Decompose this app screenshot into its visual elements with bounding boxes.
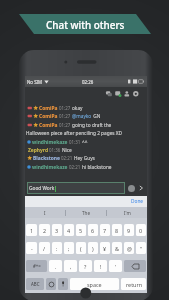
staticText: 01:27 (59, 105, 71, 111)
button[interactable]: Zephyrd (26, 146, 72, 154)
staticText: No SIM (27, 79, 43, 85)
staticText: " (140, 245, 143, 252)
button[interactable]: Chat with others (34, 14, 136, 34)
staticText: #+= (33, 263, 41, 269)
button[interactable]: ! (94, 260, 107, 272)
button[interactable]: ComiPa (26, 121, 112, 129)
staticText: ComiPa (39, 105, 58, 112)
staticText: 8 (115, 227, 119, 234)
staticText: Halloween piece after penciling 2 pages … (26, 130, 123, 136)
button[interactable]: ' (109, 260, 122, 272)
button[interactable]: 1 (26, 224, 37, 236)
staticText: 02:21 (69, 164, 81, 170)
button[interactable]: - (26, 242, 37, 254)
button[interactable]: Halloween piece after penciling 2 pages … (26, 129, 123, 137)
button[interactable]: return (121, 278, 146, 290)
button[interactable]: windhimekaze (26, 138, 88, 146)
staticText: I (44, 210, 46, 216)
button[interactable]: Profile (122, 87, 131, 101)
button[interactable]: ¥ (100, 242, 110, 254)
button[interactable]: ComiPa (26, 104, 83, 112)
button[interactable]: 9 (124, 224, 134, 236)
staticText: 3 (55, 227, 59, 234)
button[interactable]: ( (76, 242, 86, 254)
button[interactable]: windhimekaze (26, 163, 112, 171)
button[interactable]: 4 (64, 224, 74, 236)
staticText: ? (84, 263, 87, 270)
staticText: space (87, 281, 102, 288)
staticText: ' (115, 263, 117, 270)
button[interactable]: @ (124, 242, 134, 254)
button[interactable]: 5 (76, 224, 86, 236)
button[interactable]: space (70, 278, 119, 290)
staticText: : (56, 245, 58, 252)
button[interactable]: Blackstone (26, 154, 95, 162)
staticText: ; (68, 245, 70, 252)
button[interactable]: #+= (26, 260, 47, 272)
button[interactable]: ? (79, 260, 92, 272)
staticText: ComiPa (39, 113, 58, 120)
button[interactable]: & (112, 242, 122, 254)
button[interactable]: " (136, 242, 146, 254)
staticText: Hey Guys (74, 155, 95, 161)
button[interactable]: Chats (104, 87, 113, 101)
staticText: going to draft the (72, 122, 112, 128)
button[interactable]: I'm (107, 207, 147, 218)
staticText: GN (92, 113, 101, 119)
button[interactable]: 3 (52, 224, 62, 236)
staticText: windhimekaze (32, 164, 68, 171)
button[interactable]: Send (137, 184, 145, 192)
staticText: 4 (67, 227, 71, 234)
button[interactable]: : (52, 242, 62, 254)
button[interactable]: Dictate (58, 278, 68, 290)
staticText: ! (100, 263, 102, 270)
staticText: 6 (91, 227, 95, 234)
staticText: hi blackstone (82, 164, 112, 170)
button[interactable]: 6 (88, 224, 98, 236)
button[interactable]: / (39, 242, 50, 254)
button[interactable]: Attach (128, 185, 135, 192)
staticText: ( (80, 245, 82, 252)
staticText: 9 (127, 227, 131, 234)
staticText: ^^ (82, 139, 88, 145)
staticText: 5 (79, 227, 83, 234)
staticText: @mayko (72, 113, 92, 119)
staticText: Good Work (29, 185, 55, 192)
staticText: 2 (43, 227, 47, 234)
button[interactable]: Settings (131, 87, 140, 101)
button[interactable]: 2 (39, 224, 50, 236)
button[interactable]: 8 (112, 224, 122, 236)
button[interactable]: The (66, 207, 106, 218)
staticText: Blackstone (33, 155, 60, 162)
button[interactable]: ComiPa (26, 112, 101, 120)
staticText: Zephyrd (28, 147, 48, 154)
staticText: . (55, 263, 57, 270)
staticText: Done (131, 198, 144, 205)
staticText: Chat with others (46, 18, 125, 31)
staticText: 1 (30, 227, 34, 234)
staticText: return (126, 281, 142, 288)
staticText: - (31, 245, 33, 252)
button[interactable]: Messages (113, 87, 122, 101)
staticText: I'm (124, 210, 131, 216)
button[interactable]: ) (88, 242, 98, 254)
button[interactable]: I (25, 207, 65, 218)
staticText: ¥ (103, 245, 107, 252)
staticText: 01:36 (49, 147, 61, 153)
staticText: The (82, 210, 90, 216)
button[interactable]: 7 (100, 224, 110, 236)
button[interactable]: ; (64, 242, 74, 254)
button[interactable]: . (49, 260, 62, 272)
button[interactable]: Backspace (124, 260, 146, 272)
staticText: windhimekaze (32, 139, 68, 146)
button[interactable]: Good Work (29, 182, 125, 194)
button[interactable]: Done (131, 198, 144, 205)
button[interactable]: 0 (136, 224, 146, 236)
staticText: 7 (103, 227, 107, 234)
staticText: / (43, 245, 46, 252)
button[interactable]: , (64, 260, 77, 272)
button[interactable]: ABC (26, 278, 44, 290)
staticText: 01:27 (59, 113, 71, 119)
button[interactable]: Emoji (46, 278, 56, 290)
staticText: 01:27 (59, 122, 71, 128)
